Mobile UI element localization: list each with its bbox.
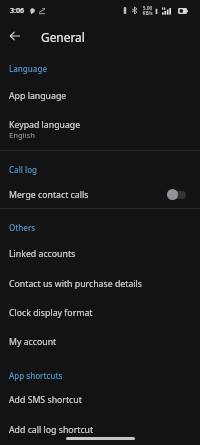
staticText: English <box>9 130 35 140</box>
staticText: My account <box>9 336 57 348</box>
button[interactable]: Contact us with purchase details <box>0 269 200 298</box>
button[interactable]: Add call log shortcut <box>0 415 200 444</box>
staticText: App language <box>9 90 67 102</box>
button[interactable]: App language <box>0 81 200 110</box>
staticText: App shortcuts <box>9 370 63 381</box>
staticText: Merge contact calls <box>9 189 89 201</box>
button[interactable]: Merge contact calls toggle <box>167 189 186 200</box>
staticText: Call log <box>9 164 38 175</box>
staticText: 3:06 <box>10 6 24 16</box>
staticText: Add call log shortcut <box>9 424 94 436</box>
staticText: General <box>41 29 85 45</box>
button[interactable]: Keypad language <box>0 110 200 151</box>
button[interactable]: Linked accounts <box>0 239 200 268</box>
staticText: Clock display format <box>9 307 93 319</box>
button[interactable]: My account <box>0 327 200 356</box>
staticText: Others <box>9 222 36 233</box>
button[interactable]: Add SMS shortcut <box>0 385 200 414</box>
staticText: Contact us with purchase details <box>9 278 143 290</box>
staticText: Linked accounts <box>9 248 76 260</box>
staticText: 5.00 KB/s <box>142 5 153 16</box>
button[interactable]: Back <box>5 26 25 46</box>
staticText: Add SMS shortcut <box>9 394 82 406</box>
staticText: Keypad language <box>9 119 81 131</box>
staticText: Language <box>9 63 47 74</box>
button[interactable]: Merge contact calls <box>0 180 200 209</box>
button[interactable]: Clock display format <box>0 298 200 327</box>
